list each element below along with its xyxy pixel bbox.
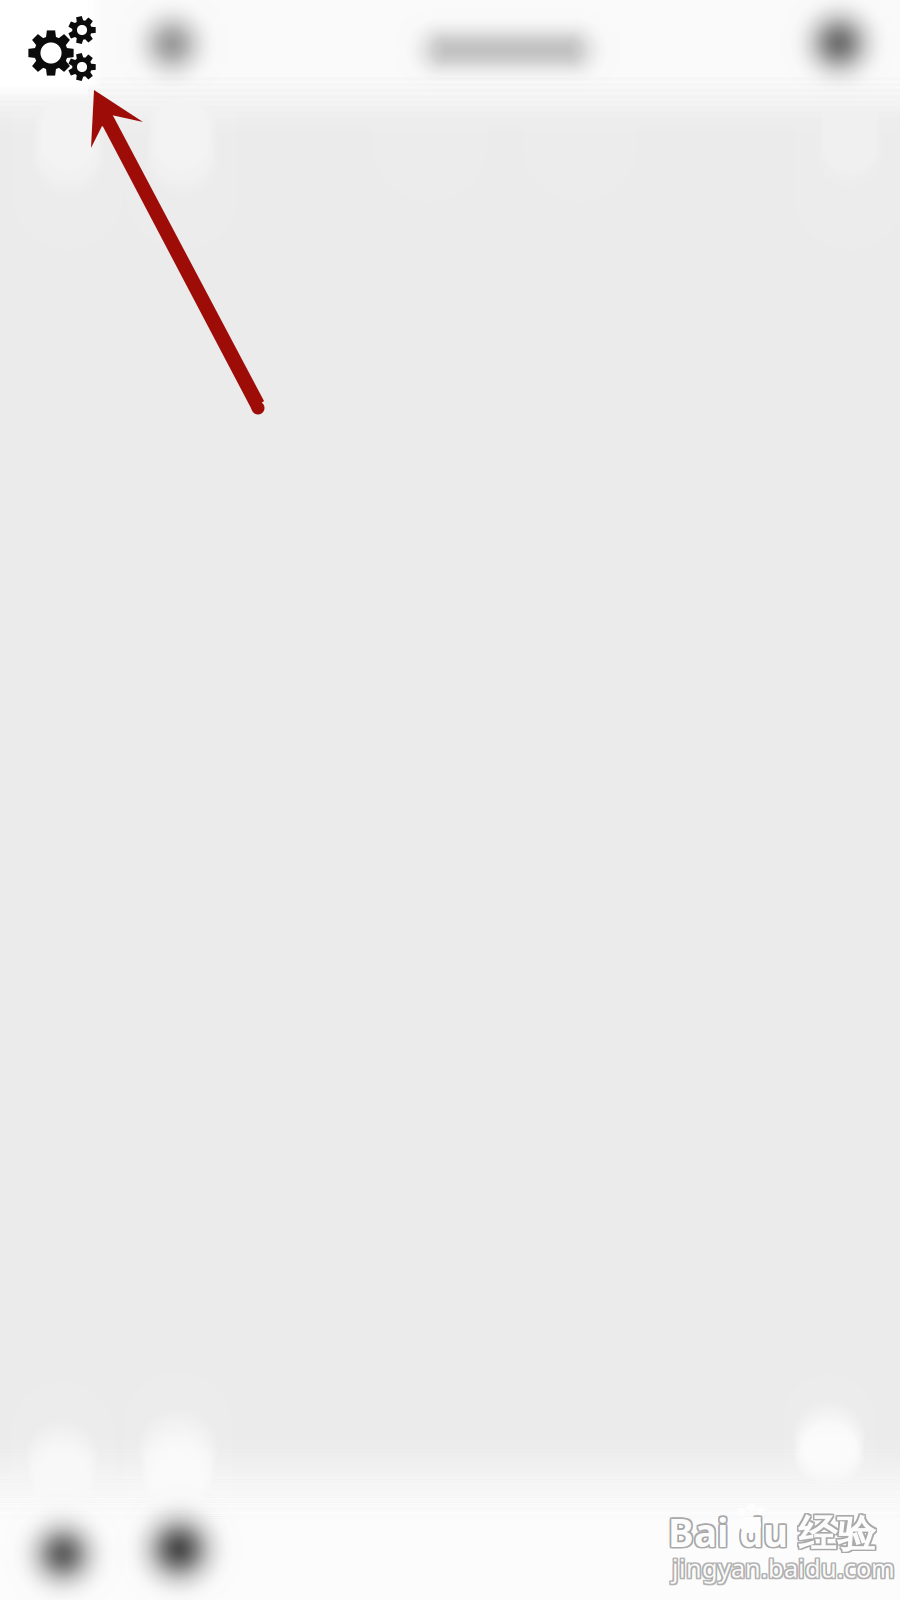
staticText: Bai du 经验 — [667, 1508, 875, 1559]
staticText: jingyan.baidu.com — [673, 1551, 896, 1585]
staticText: Bai du 经验 — [669, 1505, 877, 1556]
button[interactable]: Compose — [776, 1372, 882, 1526]
staticText: jingyan.baidu.com — [673, 1553, 896, 1586]
staticText: Bai du 经验 — [669, 1508, 877, 1559]
staticText: jingyan.baidu.com — [671, 1553, 894, 1586]
staticText: Bai du 经验 — [668, 1505, 876, 1556]
staticText: Bai du 经验 — [667, 1505, 875, 1556]
staticText: Bai du 经验 — [668, 1508, 876, 1559]
staticText: Bai du 经验 — [667, 1506, 875, 1558]
button[interactable]: Back — [106, 0, 238, 96]
button[interactable]: Title — [382, 0, 632, 102]
staticText: jingyan.baidu.com — [672, 1553, 895, 1586]
staticText: jingyan.baidu.com — [671, 1551, 894, 1585]
staticText: jingyan.baidu.com — [673, 1550, 896, 1583]
staticText: jingyan.baidu.com — [671, 1550, 894, 1583]
button[interactable]: More — [774, 0, 900, 95]
staticText: jingyan.baidu.com — [672, 1550, 895, 1583]
staticText: Bai du 经验 — [668, 1506, 876, 1558]
button[interactable]: Keyboard — [0, 1484, 133, 1600]
staticText: jingyan.baidu.com — [672, 1551, 895, 1585]
staticText: Bai du 经验 — [669, 1506, 877, 1558]
button[interactable]: Voice — [107, 1477, 251, 1600]
